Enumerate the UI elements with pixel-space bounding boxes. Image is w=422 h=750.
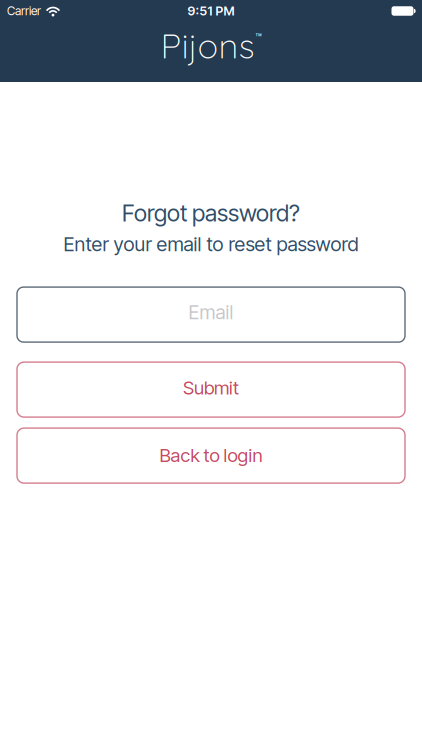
staticText: Back to login: [159, 444, 262, 466]
button[interactable]: Back to login: [17, 428, 405, 483]
staticText: Email: [188, 300, 233, 324]
staticText: Carrier: [7, 4, 41, 18]
staticText: Enter your email to reset password: [63, 232, 358, 256]
staticText: Forgot password?: [122, 199, 300, 227]
button[interactable]: Submit: [17, 362, 405, 417]
staticText: ™: [255, 31, 261, 44]
staticText: Submit: [183, 376, 239, 399]
button[interactable]: Email: [17, 287, 405, 342]
staticText: 9:51 PM: [187, 3, 234, 19]
staticText: Pijons: [160, 24, 254, 67]
